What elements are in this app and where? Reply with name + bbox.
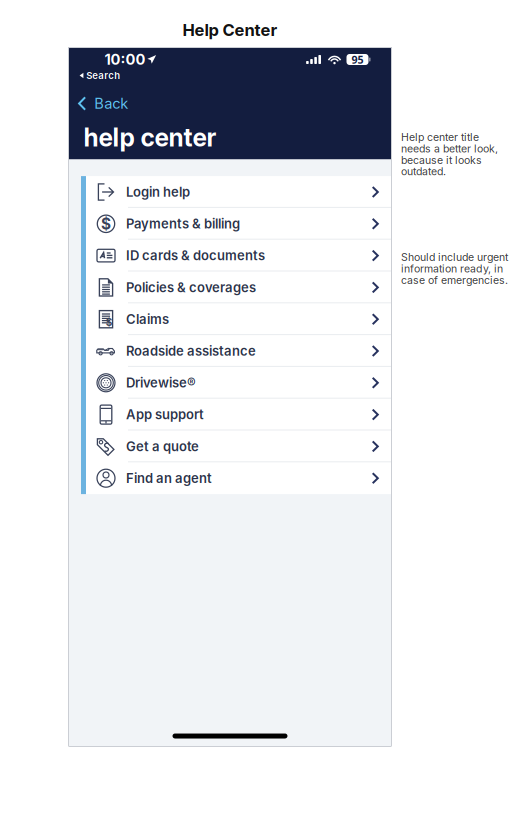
button[interactable]: ID cards & documents bbox=[86, 240, 391, 271]
button[interactable]: Get a quote bbox=[86, 430, 391, 462]
staticText: ID cards & documents bbox=[126, 248, 265, 263]
staticText: needs a better look, bbox=[401, 142, 498, 155]
staticText: Search bbox=[86, 70, 120, 81]
button[interactable]: $ bbox=[86, 303, 391, 335]
staticText: Find an agent bbox=[126, 470, 212, 486]
button[interactable]: Login help bbox=[86, 176, 391, 208]
staticText: 10:00 bbox=[104, 51, 145, 68]
staticText: Help Center bbox=[182, 20, 277, 40]
staticText: 95 bbox=[351, 52, 363, 67]
button[interactable]: App support bbox=[86, 399, 391, 430]
staticText: Should include urgent bbox=[401, 251, 508, 263]
staticText: Roadside assistance bbox=[126, 343, 256, 359]
staticText: information ready, in bbox=[401, 262, 503, 275]
staticText: App support bbox=[126, 407, 204, 422]
staticText: outdated. bbox=[401, 165, 446, 178]
button[interactable]: Find an agent bbox=[86, 462, 391, 494]
staticText: Claims bbox=[126, 311, 169, 327]
staticText: help center bbox=[83, 123, 216, 152]
staticText: Drivewise® bbox=[126, 375, 196, 390]
staticText: Back bbox=[94, 95, 128, 112]
staticText: because it looks bbox=[401, 154, 482, 166]
staticText: Login help bbox=[126, 184, 190, 200]
staticText: Get a quote bbox=[126, 439, 199, 454]
button[interactable]: $ bbox=[86, 208, 391, 240]
button[interactable]: Back bbox=[68, 91, 148, 115]
staticText: Policies & coverages bbox=[126, 280, 256, 295]
staticText: Payments & billing bbox=[126, 216, 240, 231]
button[interactable]: Roadside assistance bbox=[86, 335, 391, 367]
staticText: $ bbox=[106, 316, 113, 328]
staticText: Help center title bbox=[401, 131, 479, 143]
button[interactable]: Policies & coverages bbox=[86, 271, 391, 303]
staticText: $ bbox=[101, 215, 111, 233]
button[interactable]: Drivewise® bbox=[86, 367, 391, 399]
staticText: case of emergencies. bbox=[401, 274, 508, 286]
